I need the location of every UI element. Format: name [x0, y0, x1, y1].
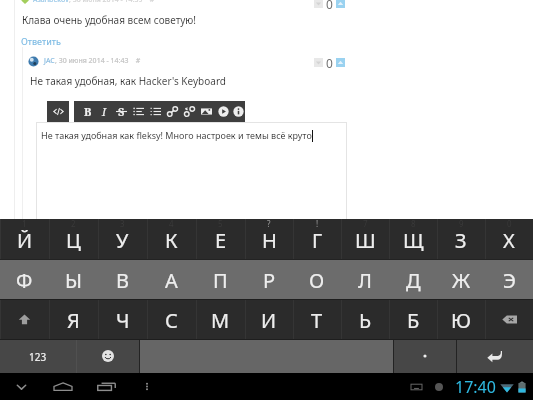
button[interactable]: Л	[341, 259, 389, 299]
button[interactable]: Vote up	[336, 58, 345, 67]
button[interactable]: Unlink	[181, 101, 198, 122]
button[interactable]: О	[293, 259, 341, 299]
staticText: Ь	[359, 307, 372, 334]
staticText: В	[116, 267, 129, 294]
staticText: 7	[363, 218, 368, 229]
button[interactable]: 4	[147, 219, 196, 259]
button[interactable]: Numbered list	[147, 101, 164, 122]
button[interactable]: С	[147, 299, 196, 339]
button[interactable]: 2	[49, 219, 98, 259]
button[interactable]: Ю	[437, 299, 485, 339]
button[interactable]: М	[196, 299, 245, 339]
staticText: , 30 июня 2014 - 14:39 #	[69, 0, 155, 4]
button[interactable]: 3	[98, 219, 147, 259]
staticText: Ц	[66, 227, 81, 254]
staticText: Ч	[116, 307, 130, 334]
button[interactable]: Emoji	[76, 339, 139, 373]
button[interactable]: Я	[49, 299, 98, 339]
button[interactable]: ?	[245, 219, 293, 259]
button[interactable]: Info	[232, 101, 245, 122]
staticText: 3	[120, 218, 125, 229]
staticText: ?	[267, 218, 271, 229]
button[interactable]: Ч	[98, 299, 147, 339]
staticText: Ж	[452, 267, 471, 294]
button[interactable]	[393, 339, 456, 373]
button[interactable]: Т	[293, 299, 341, 339]
button[interactable]: Ф	[0, 259, 49, 299]
button[interactable]: Б	[389, 299, 437, 339]
staticText: С	[165, 307, 178, 334]
staticText: Ш	[355, 227, 376, 254]
staticText: Не такая удобная, как Hacker's Keyboard	[30, 74, 226, 88]
button[interactable]: Space	[139, 339, 393, 373]
staticText: !	[316, 218, 319, 229]
button[interactable]: 9	[437, 219, 485, 259]
staticText: О	[309, 267, 325, 294]
staticText: 5	[218, 218, 223, 229]
staticText: Я	[67, 307, 80, 334]
staticText: 4	[169, 218, 174, 229]
button[interactable]: А	[147, 259, 196, 299]
button[interactable]: Bold	[79, 101, 96, 122]
button[interactable]: Bulleted list	[130, 101, 147, 122]
button[interactable]: 1	[0, 219, 49, 259]
staticText: З	[455, 227, 467, 254]
button[interactable]: 0	[485, 219, 533, 259]
staticText: I	[102, 104, 107, 119]
staticText: 1	[22, 218, 27, 229]
staticText: П	[213, 267, 228, 294]
staticText: Б	[407, 307, 420, 334]
button[interactable]: 5	[196, 219, 245, 259]
button[interactable]: Recents	[85, 373, 127, 400]
staticText: Ы	[65, 267, 82, 294]
staticText: Р	[263, 267, 276, 294]
button[interactable]: Ь	[341, 299, 389, 339]
button[interactable]: 7	[341, 219, 389, 259]
button[interactable]: Д	[389, 259, 437, 299]
staticText: Asanbekov	[33, 0, 69, 4]
staticText: Ф	[16, 267, 33, 294]
button[interactable]: П	[196, 259, 245, 299]
button[interactable]: Не такая удобная как fleksy! Много настр…	[36, 122, 347, 232]
button[interactable]: И	[245, 299, 293, 339]
button[interactable]: Menu	[126, 373, 168, 400]
staticText: Й	[17, 227, 33, 254]
button[interactable]: В	[98, 259, 147, 299]
button[interactable]: Ж	[437, 259, 485, 299]
button[interactable]: Strikethrough	[113, 101, 130, 122]
button[interactable]: 8	[389, 219, 437, 259]
button[interactable]: !	[293, 219, 341, 259]
staticText: 0	[326, 55, 333, 69]
staticText: У	[116, 227, 129, 254]
button[interactable]: Э	[485, 259, 533, 299]
button[interactable]: Р	[245, 259, 293, 299]
staticText: Д	[406, 267, 421, 294]
button[interactable]: Backspace	[485, 299, 533, 339]
button[interactable]: 123	[0, 339, 76, 373]
button[interactable]: Vote down	[314, 58, 323, 67]
staticText: Т	[311, 307, 323, 334]
staticText: Н	[262, 227, 277, 254]
button[interactable]: Shift	[0, 299, 49, 339]
button[interactable]: Enter	[456, 339, 533, 373]
staticText: 8	[411, 218, 416, 229]
staticText: Не такая удобная как fleksy! Много настр…	[41, 129, 312, 141]
button[interactable]: Video	[215, 101, 232, 122]
staticText: 17:40	[455, 376, 496, 398]
button[interactable]: Ы	[49, 259, 98, 299]
button[interactable]: Link	[164, 101, 181, 122]
button[interactable]: Home	[42, 373, 84, 400]
button[interactable]: Source code	[47, 101, 69, 122]
staticText: JAC	[44, 56, 55, 66]
button[interactable]: Image	[198, 101, 215, 122]
button[interactable]: Ответить	[21, 35, 61, 47]
button[interactable]: Vote down	[314, 0, 323, 8]
button[interactable]: Back	[0, 373, 42, 400]
button[interactable]: Italic	[96, 101, 113, 122]
staticText: Клава очень удобная всем советую!	[22, 13, 197, 27]
staticText: К	[165, 227, 178, 254]
staticText: Е	[215, 227, 227, 254]
staticText: , 30 июня 2014 - 14:43 #	[55, 56, 141, 66]
staticText: 0	[326, 0, 333, 10]
button[interactable]: Vote up	[336, 0, 345, 8]
